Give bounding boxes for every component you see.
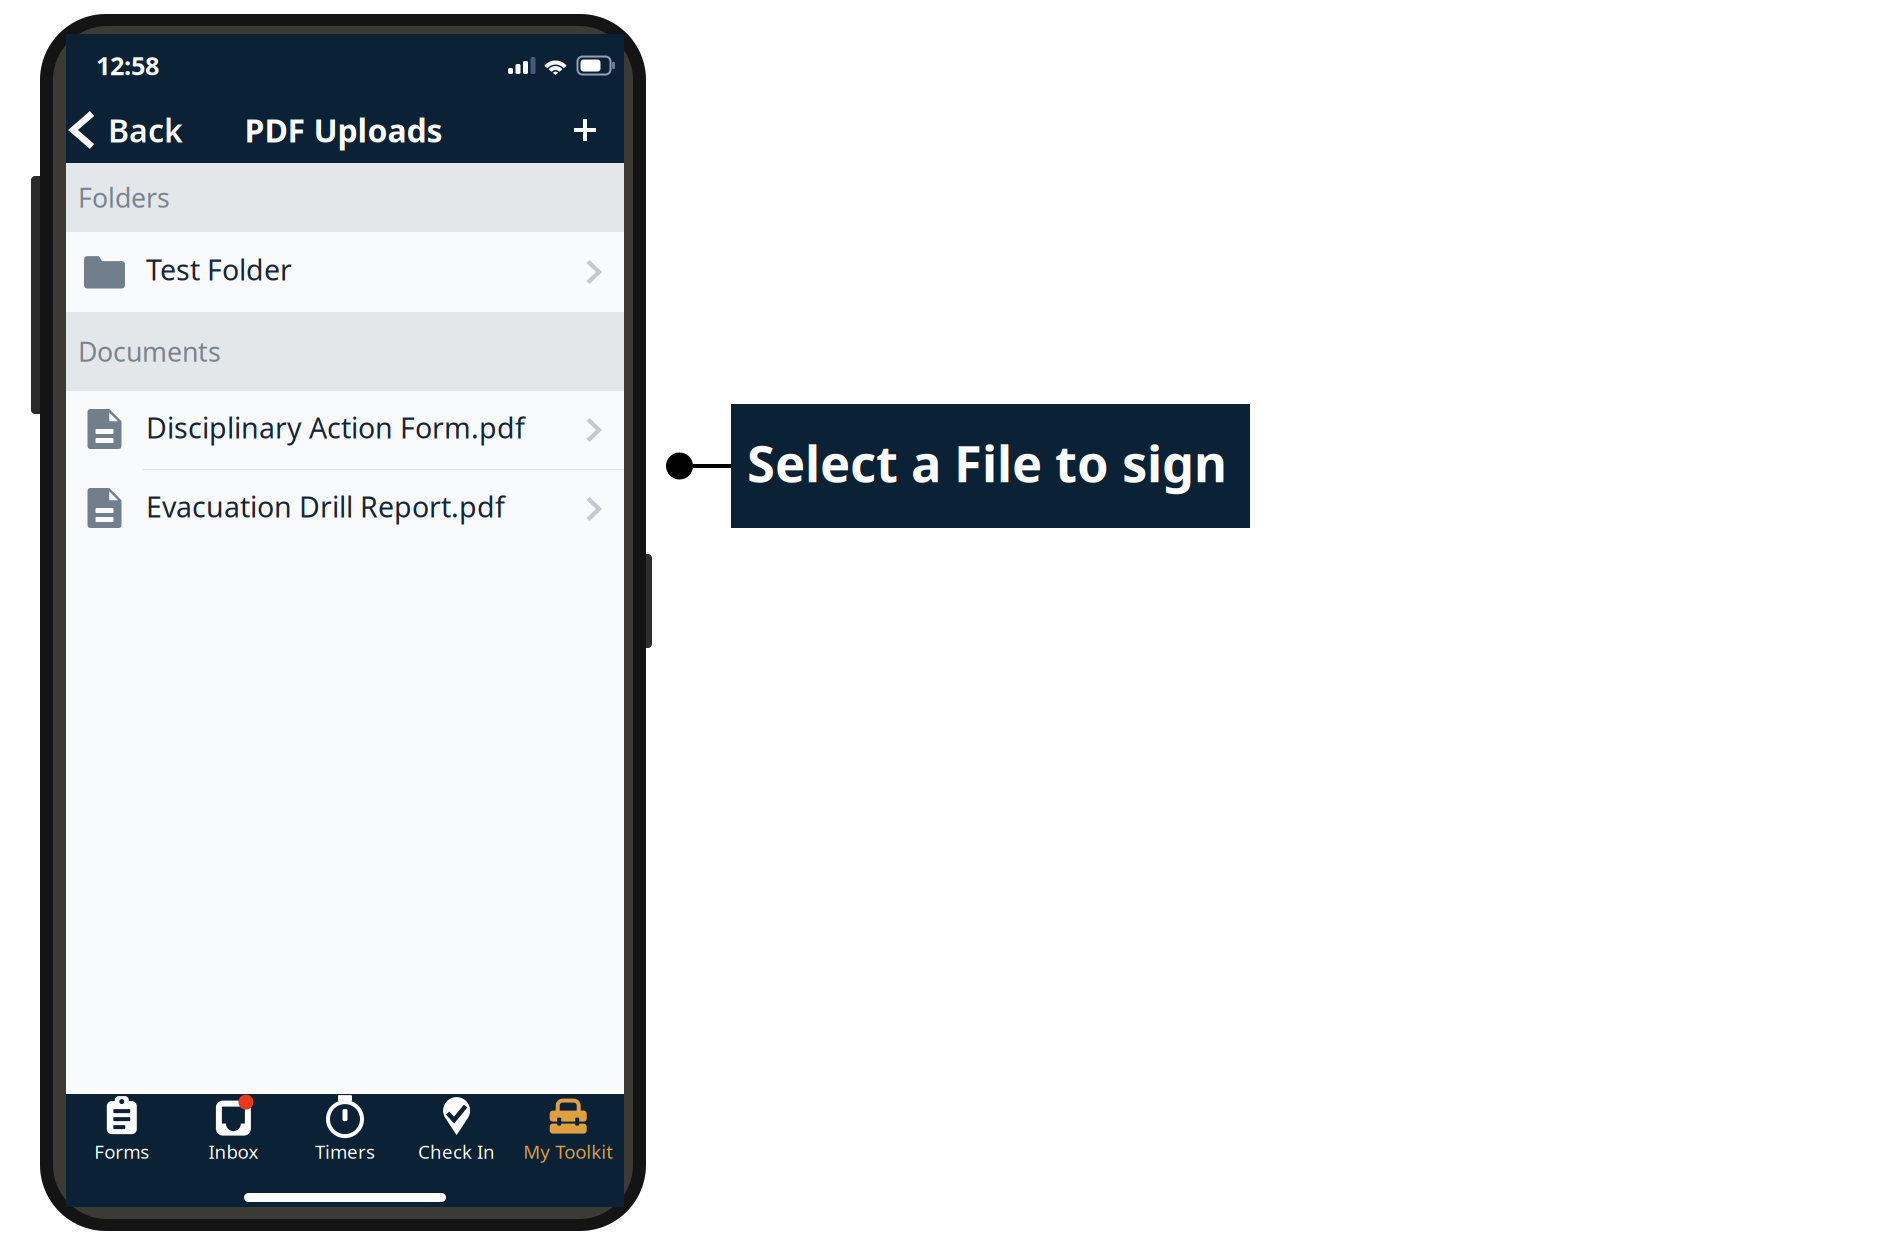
button[interactable]: Back <box>66 99 183 161</box>
button[interactable]: Disciplinary Action Form.pdf <box>66 391 624 469</box>
staticText: Forms <box>94 1139 149 1164</box>
staticText: 12:58 <box>96 49 159 82</box>
button[interactable]: Forms <box>66 1097 178 1161</box>
staticText: Check In <box>418 1139 495 1164</box>
staticText: Inbox <box>208 1139 258 1164</box>
staticText: Test Folder <box>146 250 292 289</box>
staticText: Disciplinary Action Form.pdf <box>146 408 525 447</box>
staticText: Documents <box>78 334 221 369</box>
staticText: Timers <box>315 1139 375 1164</box>
staticText: Evacuation Drill Report.pdf <box>146 487 505 526</box>
button[interactable]: Evacuation Drill Report.pdf <box>66 470 624 548</box>
button[interactable]: Add document <box>552 103 624 157</box>
staticText: PDF Uploads <box>244 109 442 151</box>
staticText: Folders <box>78 180 170 215</box>
staticText: Select a File to sign <box>747 429 1227 496</box>
staticText: My Toolkit <box>523 1139 613 1164</box>
staticText: Back <box>108 109 183 151</box>
button[interactable]: Inbox <box>178 1097 289 1161</box>
button[interactable]: My Toolkit <box>512 1097 624 1161</box>
button[interactable]: Check In <box>401 1097 512 1161</box>
button[interactable]: Test Folder <box>66 232 624 312</box>
button[interactable]: Timers <box>289 1097 401 1161</box>
